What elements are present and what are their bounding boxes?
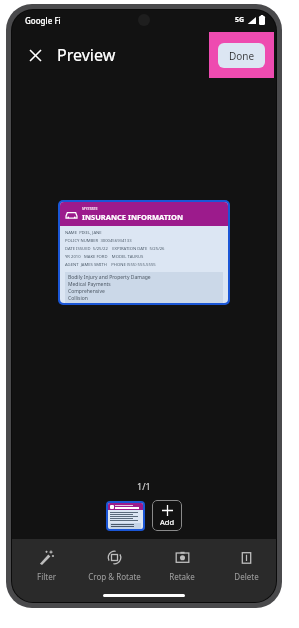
staticText: Google Fi	[25, 15, 61, 26]
staticText: Retake	[169, 571, 195, 582]
staticText: MYSTATE	[82, 206, 98, 211]
button[interactable]: Delete	[216, 548, 276, 584]
staticText: 1/1	[137, 480, 151, 492]
button[interactable]: Filter	[12, 548, 80, 584]
staticText: Crop & Rotate	[88, 571, 141, 582]
staticText: Filter	[37, 571, 56, 582]
staticText: AGENT JAMES SMITH PHONE (555) 555-5555	[65, 262, 156, 268]
button[interactable]: Done	[218, 43, 265, 68]
button[interactable]: Close	[20, 40, 50, 70]
staticText: Preview	[57, 44, 116, 66]
button[interactable]: Add	[152, 500, 182, 531]
staticText: 5G	[235, 15, 245, 25]
staticText: Medical Payments	[68, 281, 111, 288]
staticText: Comprehensive	[68, 288, 105, 295]
staticText: Bodily Injury and Property Damage	[68, 274, 151, 281]
staticText: INSURANCE INFORMATION	[82, 212, 183, 222]
staticText: Add	[160, 517, 175, 527]
button[interactable]: Page 1 thumbnail	[108, 503, 143, 529]
staticText: POLICY NUMBER 3000456934133	[65, 238, 132, 244]
staticText: NAME PIXEL, JANE	[65, 230, 102, 236]
staticText: Collision	[68, 295, 88, 301]
staticText: YR 2010 MAKE FORD MODEL TAURUS	[65, 254, 144, 260]
staticText: DATE ISSUED 5/25/22 EXPIRATION DATE 5/25…	[65, 246, 165, 252]
button[interactable]: Crop & Rotate	[80, 548, 148, 584]
button[interactable]: MYSTATE	[60, 202, 228, 303]
button[interactable]: Retake	[148, 548, 216, 584]
staticText: Done	[229, 49, 255, 63]
staticText: Delete	[234, 571, 259, 582]
